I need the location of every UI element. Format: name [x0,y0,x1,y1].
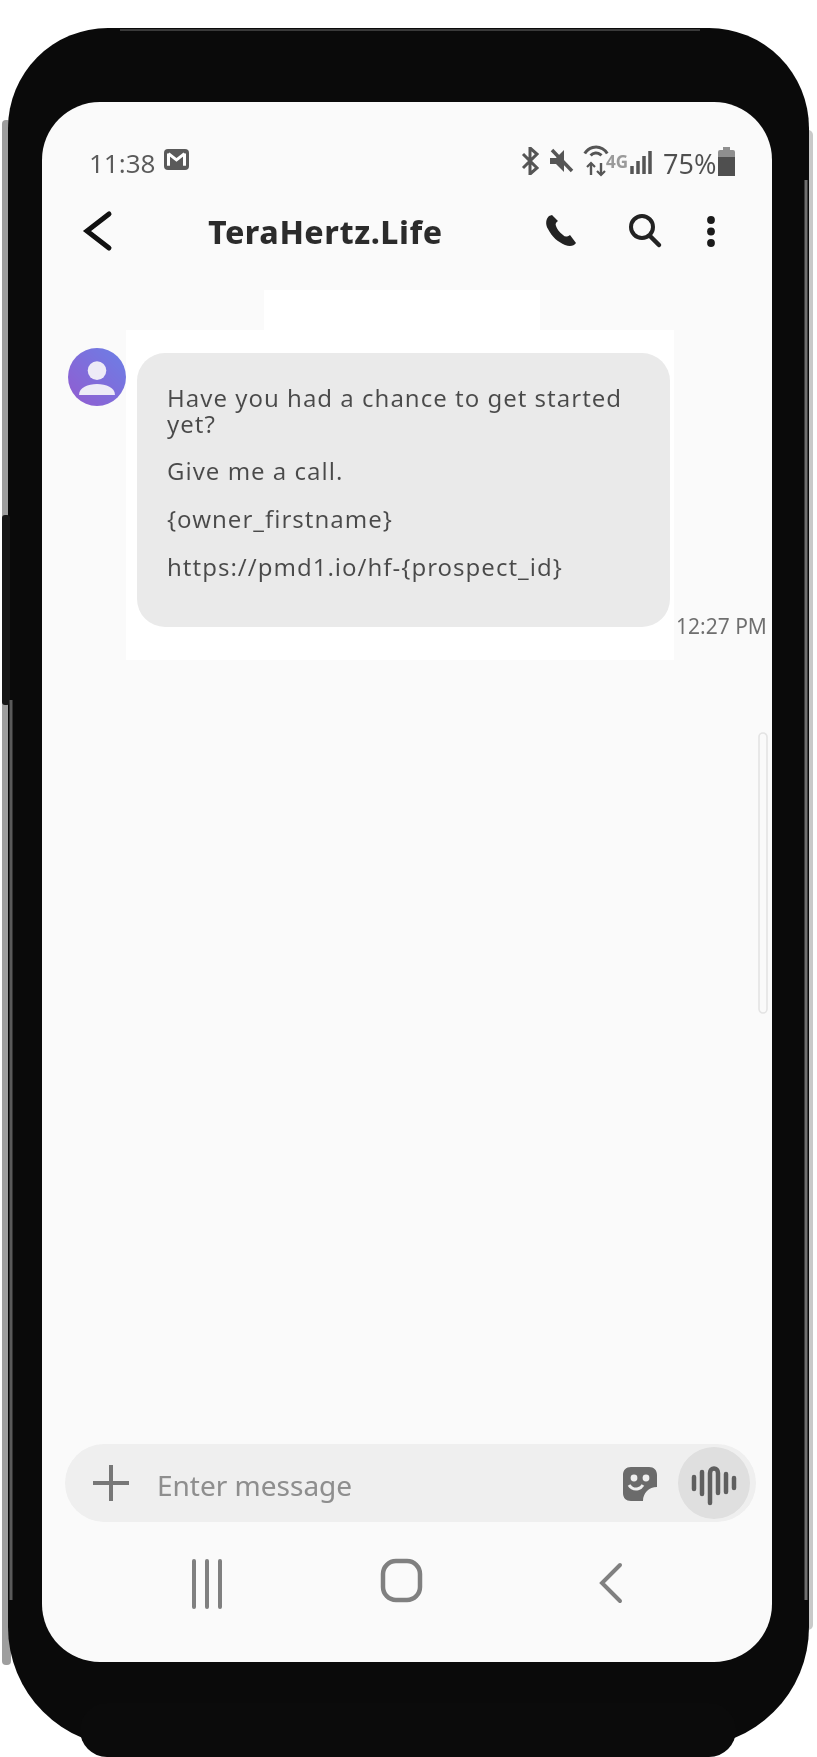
staticText: Enter message [157,1466,353,1504]
button[interactable] [600,1564,620,1602]
button[interactable] [85,214,109,248]
button[interactable] [192,1561,222,1607]
staticText: yet? [167,407,216,440]
button[interactable]: TeraHertz.Life [208,210,443,254]
button[interactable] [628,214,662,248]
staticText: Give me a call. [167,454,344,487]
button[interactable] [623,1467,657,1501]
button[interactable]: Enter message [65,1444,756,1522]
button[interactable] [383,1561,420,1600]
button[interactable]: Have you had a chance to get started [137,353,670,627]
staticText: Have you had a chance to get started [167,381,623,414]
staticText: {owner_firstname} [167,502,393,535]
staticText: 75% [663,145,717,182]
button[interactable] [678,1447,750,1519]
staticText: 11:38 [89,145,156,180]
staticText: https://pmd1.io/hf-{prospect_id} [167,550,563,583]
staticText: 4G [606,150,629,173]
button[interactable] [68,348,126,406]
button[interactable] [704,214,718,250]
staticText: 12:27 PM [676,612,767,641]
button[interactable] [544,214,578,248]
